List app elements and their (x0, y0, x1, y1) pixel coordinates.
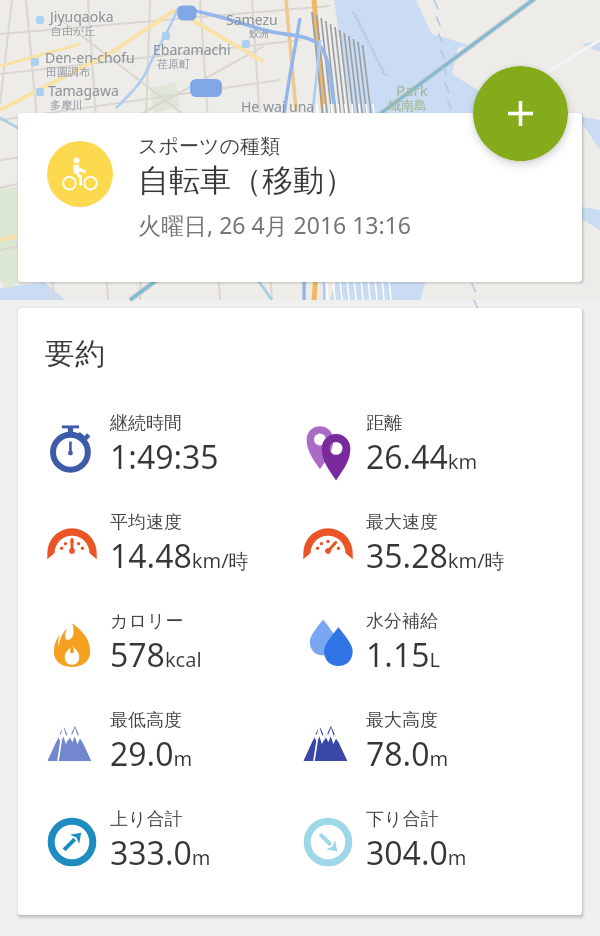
staticText: 自転車（移動） (138, 161, 355, 200)
button[interactable]: 最大高度 (301, 709, 582, 776)
staticText: 1.15L (366, 633, 440, 677)
staticText: 26.44km (366, 435, 478, 479)
staticText: 29.0m (110, 732, 193, 776)
button[interactable]: 距離 (301, 412, 582, 479)
staticText: 下り合計 (366, 808, 439, 831)
button[interactable]: カロリー (45, 610, 300, 677)
staticText: 継続時間 (110, 412, 182, 435)
staticText: 距離 (366, 412, 402, 435)
staticText: 水分補給 (366, 610, 438, 633)
button[interactable]: スポーツの種類 (18, 113, 582, 282)
staticText: 最大高度 (366, 709, 438, 732)
staticText: カロリー (110, 610, 184, 633)
staticText: 333.0m (110, 831, 211, 875)
button[interactable]: 水分補給 (301, 610, 582, 677)
button[interactable]: 最大速度 (301, 511, 582, 578)
staticText: Tamagawa (48, 81, 119, 100)
staticText: He wai una (241, 97, 315, 116)
staticText: Den-en-chofu (45, 48, 135, 67)
staticText: 35.28km/時 (366, 534, 505, 578)
staticText: 578kcal (110, 633, 202, 677)
staticText: 1:49:35 (110, 435, 219, 479)
staticText: スポーツの種類 (138, 134, 280, 159)
staticText: Ebaramachi (153, 40, 231, 59)
button[interactable]: 継続時間 (45, 412, 300, 479)
staticText: Jiyuqaoka (50, 7, 114, 26)
staticText: 自由が丘 (51, 24, 96, 38)
staticText: 多摩川 (50, 98, 83, 112)
staticText: 304.0m (366, 831, 467, 875)
staticText: 鮫洲 (249, 27, 269, 40)
staticText: 平均速度 (110, 511, 182, 534)
staticText: 火曜日, 26 4月 2016 13:16 (138, 209, 411, 240)
staticText: 城南島 (388, 97, 427, 113)
staticText: 最低高度 (110, 709, 182, 732)
button[interactable]: 下り合計 (301, 808, 582, 875)
staticText: 荏原町 (157, 57, 190, 71)
staticText: Samezu (226, 10, 278, 29)
button[interactable]: Add new activity (473, 66, 568, 161)
button[interactable]: 最低高度 (45, 709, 300, 776)
button[interactable]: 上り合計 (45, 808, 300, 875)
button[interactable]: 平均速度 (45, 511, 300, 578)
staticText: Park (396, 80, 428, 100)
staticText: 要約 (45, 335, 105, 373)
staticText: 上り合計 (110, 808, 183, 831)
staticText: 最大速度 (366, 511, 438, 534)
staticText: 78.0m (366, 732, 449, 776)
staticText: 田園調布 (46, 65, 90, 79)
staticText: 14.48km/時 (110, 534, 249, 578)
